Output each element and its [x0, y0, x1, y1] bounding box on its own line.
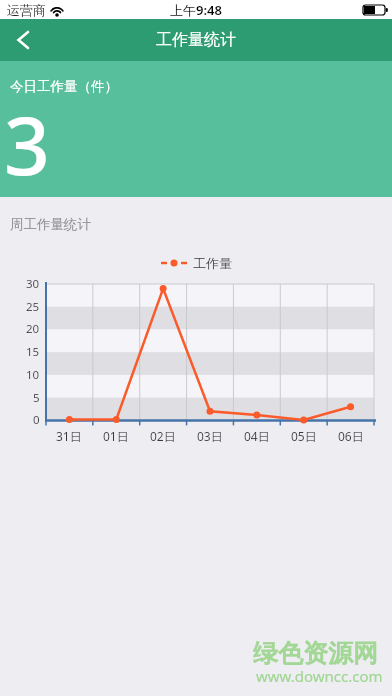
staticText: 周工作量统计 [10, 216, 91, 233]
staticText: 工作量 [193, 255, 232, 271]
staticText: 今日工作量（件） [10, 78, 118, 95]
staticText: 05日 [291, 428, 317, 444]
staticText: 15 [26, 344, 40, 360]
staticText: 30 [26, 276, 40, 292]
staticText: 31日 [56, 428, 82, 444]
staticText: 上午9:48 [170, 1, 222, 19]
staticText: 02日 [150, 428, 176, 444]
staticText: 运营商 [7, 2, 46, 18]
staticText: 绿色资源网 [253, 638, 378, 669]
staticText: 25 [26, 299, 40, 315]
staticText: www.downcc.com [256, 666, 383, 686]
staticText: 5 [33, 390, 40, 406]
staticText: 20 [26, 321, 40, 337]
staticText: 06日 [338, 428, 364, 444]
button[interactable] [0, 19, 44, 61]
staticText: 01日 [103, 428, 129, 444]
staticText: 工作量统计 [156, 30, 236, 50]
staticText: 3 [4, 89, 50, 198]
staticText: 04日 [244, 428, 270, 444]
staticText: 0 [33, 412, 40, 428]
staticText: 03日 [197, 428, 223, 444]
staticText: 10 [26, 367, 40, 383]
